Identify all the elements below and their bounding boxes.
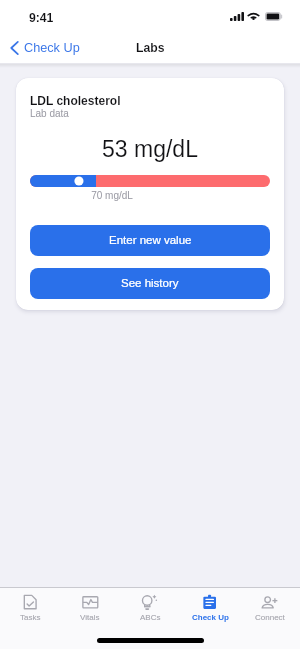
staticText: Lab data (30, 108, 69, 119)
button[interactable]: Check Up (6, 37, 86, 59)
button[interactable]: See history (30, 268, 270, 299)
button[interactable]: Vitals (60, 588, 120, 637)
staticText: Vitals (80, 613, 100, 622)
staticText: Connect (255, 613, 285, 622)
button[interactable]: Enter new value (30, 225, 270, 256)
staticText: ABCs (140, 613, 161, 622)
staticText: LDL cholesterol (30, 94, 121, 107)
button[interactable]: Check Up (180, 588, 240, 637)
staticText: 70 mg/dL (52, 190, 172, 201)
button[interactable]: ABCs (120, 588, 180, 637)
staticText: 9:41 (29, 11, 54, 25)
staticText: Labs (136, 41, 165, 55)
button[interactable]: Connect (240, 588, 300, 637)
button[interactable]: Tasks (0, 588, 60, 637)
staticText: Check Up (192, 613, 229, 622)
staticText: Check Up (24, 41, 80, 55)
staticText: Enter new value (109, 234, 192, 247)
staticText: See history (121, 277, 179, 290)
staticText: 53 mg/dL (16, 136, 284, 162)
staticText: Tasks (20, 613, 41, 622)
